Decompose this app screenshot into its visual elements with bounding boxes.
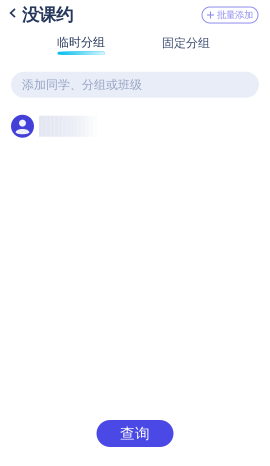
button[interactable]: 添加同学、分组或班级: [11, 72, 259, 98]
staticText: 没课约: [22, 4, 73, 26]
staticText: 固定分组: [162, 36, 210, 50]
staticText: 临时分组: [57, 35, 105, 50]
button[interactable]: [0, 115, 270, 138]
staticText: 批量添加: [217, 9, 253, 21]
staticText: 添加同学、分组或班级: [22, 77, 142, 92]
button[interactable]: 批量添加: [202, 7, 258, 23]
staticText: 查询: [120, 424, 150, 442]
button[interactable]: 临时分组: [34, 35, 128, 55]
button[interactable]: 查询: [96, 420, 173, 447]
button[interactable]: Back: [0, 4, 73, 26]
button[interactable]: 固定分组: [139, 36, 233, 54]
